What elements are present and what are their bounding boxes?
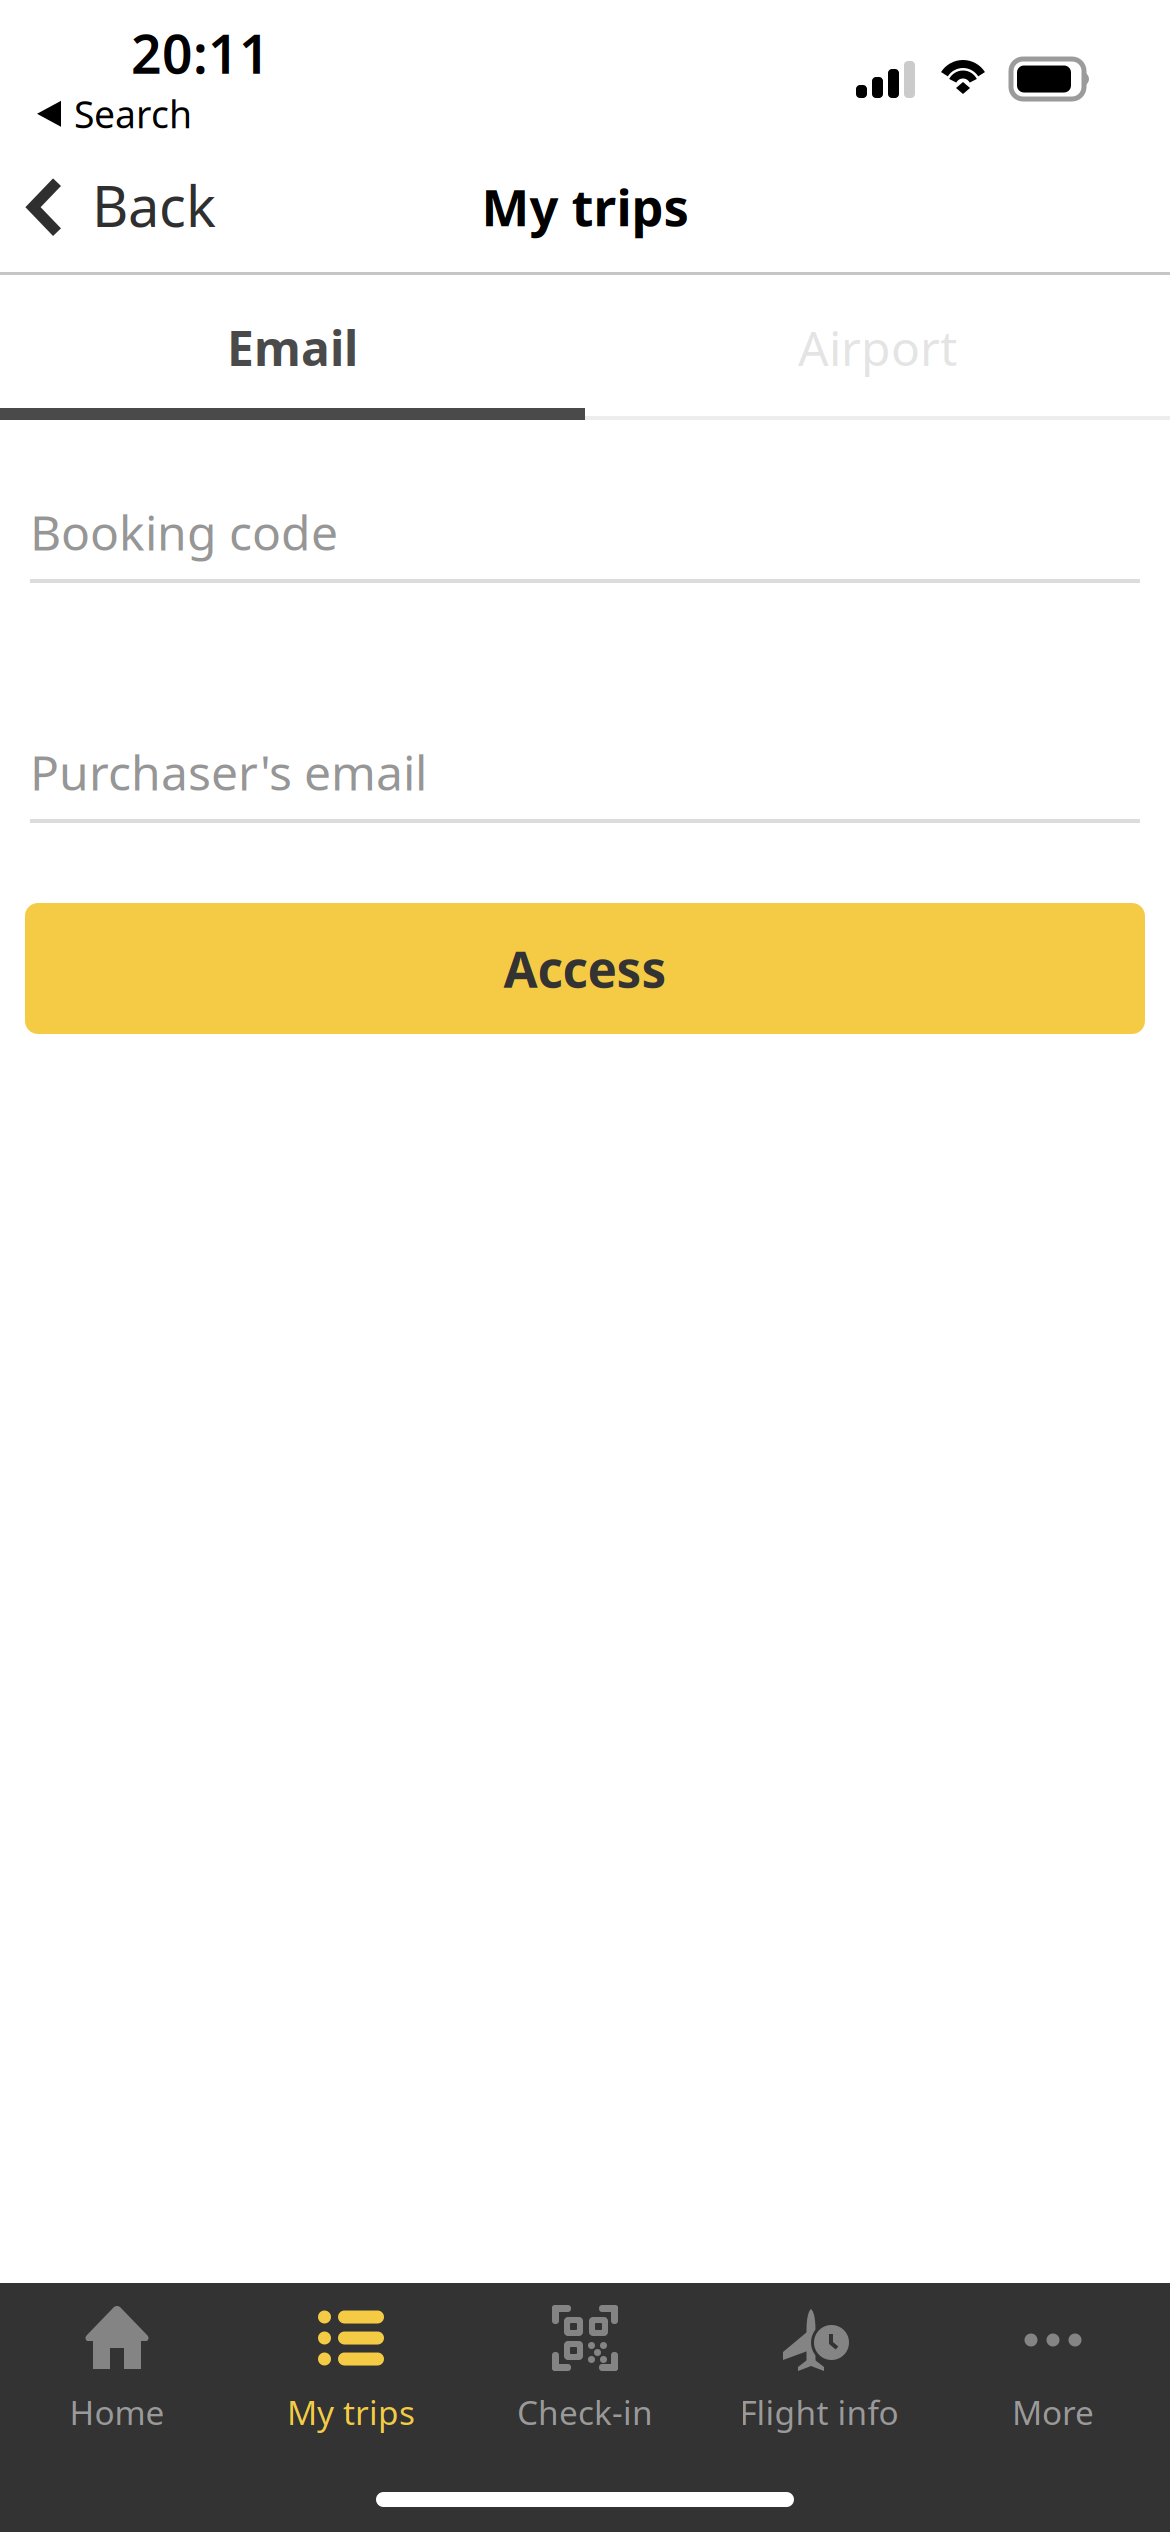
staticText: Email [227, 316, 358, 379]
button[interactable]: More [936, 2283, 1170, 2443]
button[interactable]: Airport [585, 275, 1170, 408]
staticText: Purchaser's email [30, 740, 427, 804]
staticText: Check-in [517, 2390, 653, 2434]
staticText: Booking code [30, 500, 338, 564]
staticText: Access [503, 936, 666, 1001]
staticText: Flight info [739, 2390, 898, 2434]
staticText: Airport [798, 316, 957, 379]
staticText: Search [74, 89, 192, 139]
staticText: My trips [481, 173, 688, 240]
staticText: More [1012, 2390, 1094, 2434]
staticText: My trips [287, 2390, 415, 2434]
button[interactable]: Check-in [468, 2283, 702, 2443]
staticText: 20:11 [131, 18, 270, 88]
button[interactable]: Flight info [702, 2283, 936, 2443]
staticText: Back [92, 168, 216, 242]
button[interactable]: Home [0, 2283, 234, 2443]
button[interactable]: Search [37, 89, 192, 139]
button[interactable]: Access [25, 903, 1145, 1034]
button[interactable]: Back [0, 156, 236, 258]
button[interactable]: My trips [234, 2283, 468, 2443]
button[interactable]: Email [0, 275, 585, 408]
staticText: Home [69, 2390, 164, 2434]
